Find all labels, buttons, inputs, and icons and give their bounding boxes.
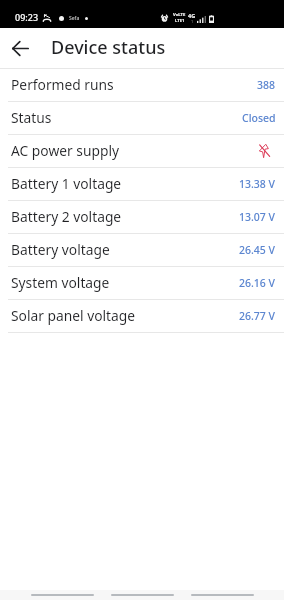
button[interactable]: Back	[12, 41, 29, 56]
staticText: 13.38 V	[239, 177, 276, 191]
button[interactable]: Status	[0, 102, 284, 135]
staticText: Solar panel voltage	[11, 306, 136, 325]
button[interactable]: Solar panel voltage	[0, 300, 284, 333]
staticText: AC power supply	[11, 141, 120, 160]
staticText: Device status	[51, 35, 166, 60]
staticText: 13.07 V	[239, 210, 276, 224]
button[interactable]: AC power supply	[0, 135, 284, 168]
staticText: Closed	[242, 111, 276, 125]
staticText: Performed runs	[11, 75, 114, 94]
staticText: 4G	[188, 12, 196, 19]
staticText: Battery 1 voltage	[11, 174, 122, 193]
staticText: 26.77 V	[239, 309, 276, 323]
staticText: 09:23	[15, 11, 39, 23]
staticText: 388	[257, 78, 276, 92]
staticText: 26.16 V	[239, 276, 276, 290]
button[interactable]: Battery voltage	[0, 234, 284, 267]
staticText: LTE1	[175, 18, 185, 24]
button[interactable]: Performed runs	[0, 69, 284, 102]
button[interactable]: Battery 1 voltage	[0, 168, 284, 201]
button[interactable]: Battery 2 voltage	[0, 201, 284, 234]
staticText: Status	[11, 108, 52, 127]
staticText: Battery voltage	[11, 240, 110, 259]
staticText: Battery 2 voltage	[11, 207, 122, 226]
staticText: 26.45 V	[239, 243, 276, 257]
button[interactable]: System voltage	[0, 267, 284, 300]
staticText: VoLTE	[173, 12, 186, 18]
staticText: System voltage	[11, 273, 110, 292]
staticText: 1	[191, 19, 194, 24]
staticText: Sefa	[69, 15, 80, 22]
